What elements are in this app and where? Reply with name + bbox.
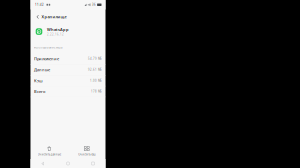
staticText: Хранилище [41,14,66,19]
staticText: Данные [34,67,50,72]
staticText: 11:42 [35,3,44,6]
staticText: 178 МБ [91,90,102,93]
staticText: Всего [34,89,45,94]
staticText: Использование места [34,46,62,49]
button[interactable]: Home [55,159,80,168]
button[interactable]: Back [34,12,41,21]
button[interactable]: Приложение [30,53,105,64]
button[interactable]: Back [30,159,55,168]
staticText: 36 [92,3,96,6]
button[interactable]: Очистить данные [30,144,68,158]
staticText: 54.79 МБ [88,57,102,60]
staticText: WhatsApp [47,27,69,32]
button[interactable]: Recent apps [80,159,105,168]
staticText: Кэш [34,78,43,83]
staticText: 1.00 МБ [90,79,102,82]
button[interactable]: Данные [30,64,105,75]
staticText: 2.22.16.12 [47,33,64,36]
staticText: Приложение [34,56,59,61]
staticText: Очистить данные [38,153,61,156]
button[interactable]: Очистить кэш [68,144,105,158]
staticText: Очистить кэш [78,153,95,156]
staticText: 92.61 МБ [88,68,102,71]
button[interactable]: Всего [30,86,105,97]
button[interactable]: Кэш [30,75,105,86]
